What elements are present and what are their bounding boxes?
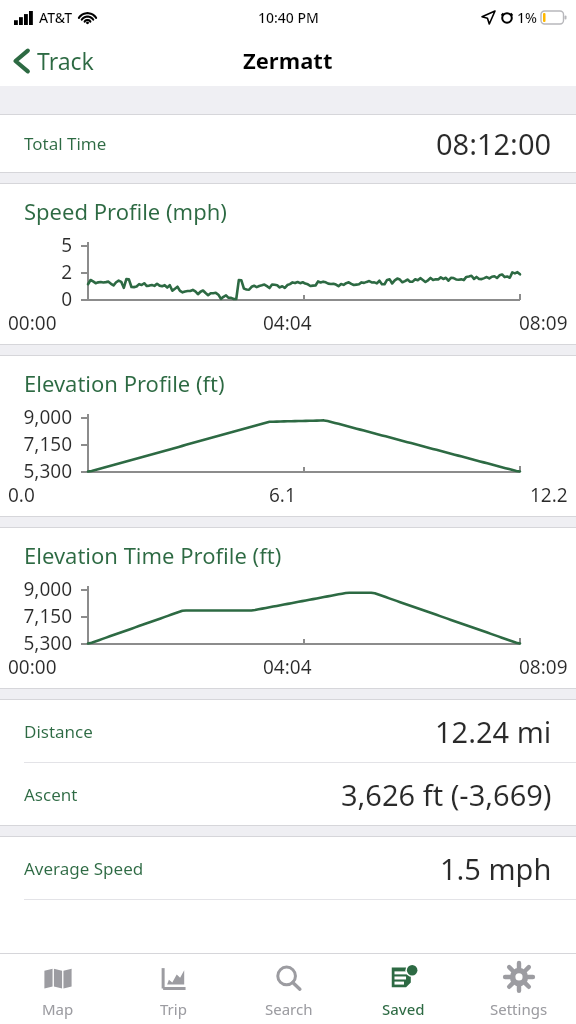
button[interactable]: Saved [346,954,461,1024]
staticText: 5,300 [23,458,72,482]
staticText: 2 [61,259,72,283]
staticText: Trip [160,999,187,1019]
staticText: 5,300 [23,630,72,654]
staticText: Ascent [24,783,78,806]
staticText: 7,150 [23,603,72,627]
staticText: 3,626 ft (-3,669) [341,775,552,814]
staticText: Speed Profile (mph) [24,196,227,226]
staticText: 04:04 [263,310,312,336]
staticText: 08:09 [519,310,568,336]
staticText: 12.2 [530,482,568,508]
staticText: Map [42,999,74,1019]
staticText: 9,000 [23,576,72,600]
staticText: 9,000 [23,404,72,428]
staticText: 08:09 [519,654,568,680]
button[interactable]: Ascent [0,763,576,825]
staticText: Elevation Profile (ft) [24,368,225,398]
staticText: 12.24 mi [435,712,552,751]
staticText: 00:00 [8,654,57,680]
button[interactable]: Search [231,954,346,1024]
staticText: Total Time [24,132,107,155]
staticText: Zermatt [243,45,333,75]
staticText: Saved [382,999,425,1019]
staticText: AT&T [39,8,73,27]
staticText: 0 [61,286,72,310]
staticText: 1% [517,8,537,27]
button[interactable]: Settings [461,954,576,1024]
staticText: 1.5 mph [440,849,552,888]
staticText: 08:12:00 [436,124,552,163]
staticText: 0.0 [8,482,35,508]
staticText: Track [37,45,94,76]
button[interactable]: Track [0,39,106,82]
staticText: Search [265,999,313,1019]
staticText: 10:40 PM [258,8,319,27]
staticText: Elevation Time Profile (ft) [24,540,282,570]
button[interactable]: Trip [116,954,231,1024]
button[interactable]: Total Time [0,115,576,172]
staticText: 5 [61,232,72,256]
staticText: 04:04 [263,654,312,680]
button[interactable]: Map [0,954,116,1024]
button[interactable]: Average Speed [0,837,576,900]
staticText: Distance [24,720,93,743]
staticText: Average Speed [24,857,144,880]
staticText: Settings [490,999,548,1019]
staticText: 6.1 [269,482,296,508]
staticText: 00:00 [8,310,57,336]
button[interactable]: Distance [0,700,576,763]
staticText: 7,150 [23,431,72,455]
